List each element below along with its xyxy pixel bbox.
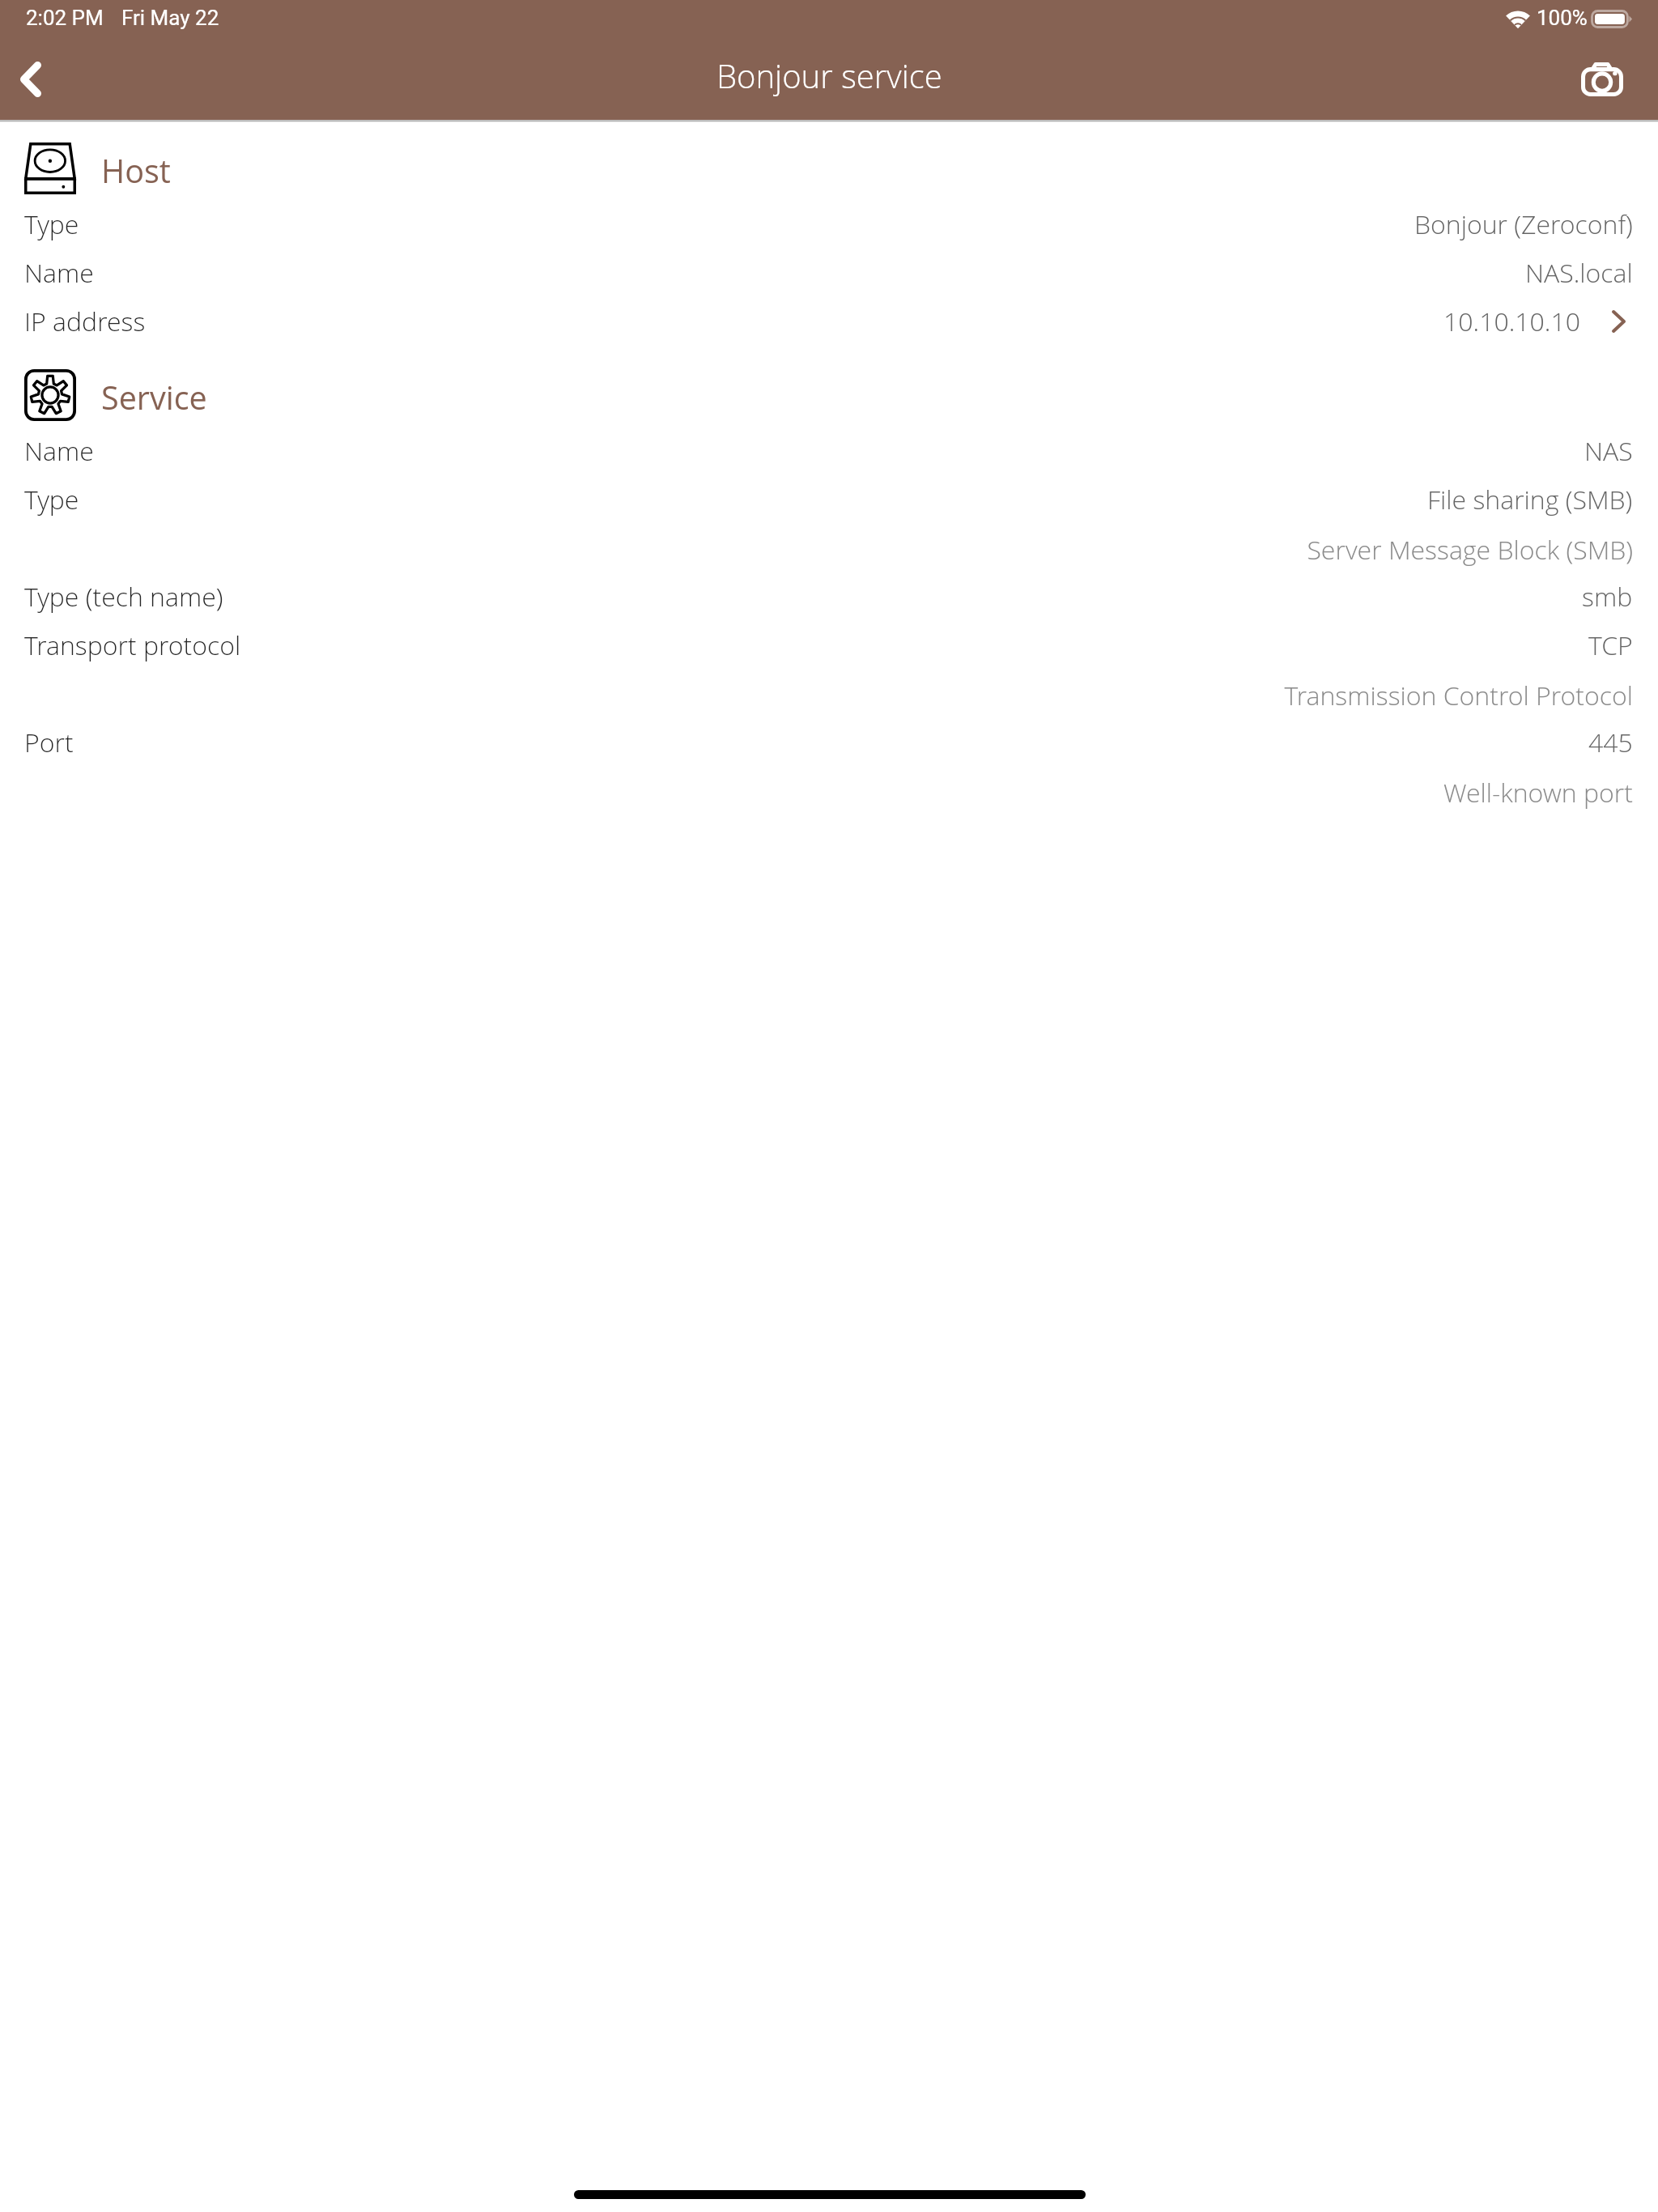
staticText: Well-known port — [0, 775, 1633, 810]
button[interactable]: Name — [0, 428, 1658, 474]
button[interactable]: IP address — [0, 298, 1658, 345]
button[interactable]: Type — [0, 201, 1658, 248]
staticText: TCP — [1588, 627, 1633, 663]
staticText: IP address — [24, 304, 146, 339]
button[interactable]: Camera — [1566, 44, 1639, 115]
button[interactable]: Type — [0, 476, 1658, 523]
staticText: 100% — [1537, 6, 1588, 30]
button[interactable]: Type (tech name) — [0, 573, 1658, 620]
button[interactable]: Name — [0, 249, 1658, 296]
button[interactable]: Port — [0, 719, 1658, 766]
staticText: Host — [101, 149, 171, 193]
staticText: Server Message Block (SMB) — [0, 532, 1633, 568]
staticText: Name — [24, 433, 94, 469]
staticText: Type — [24, 482, 79, 517]
staticText: Service — [101, 376, 207, 419]
staticText: 445 — [1588, 725, 1633, 760]
staticText: Port — [24, 725, 74, 760]
staticText: Bonjour service — [716, 53, 942, 97]
staticText: 10.10.10.10 — [1443, 304, 1580, 339]
button[interactable]: Back — [0, 44, 62, 115]
button[interactable]: Transport protocol — [0, 622, 1658, 669]
staticText: Bonjour (Zeroconf) — [1414, 206, 1633, 242]
staticText: 2:02 PM — [26, 6, 104, 30]
staticText: NAS.local — [1525, 255, 1633, 291]
staticText: Type (tech name) — [24, 579, 223, 615]
staticText: Transport protocol — [24, 627, 241, 663]
staticText: File sharing (SMB) — [1427, 482, 1633, 517]
staticText: Type — [24, 206, 79, 242]
staticText: Transmission Control Protocol — [0, 678, 1633, 713]
staticText: NAS — [1584, 433, 1633, 469]
staticText: Fri May 22 — [121, 6, 219, 30]
staticText: Name — [24, 255, 94, 291]
staticText: smb — [1582, 579, 1633, 615]
